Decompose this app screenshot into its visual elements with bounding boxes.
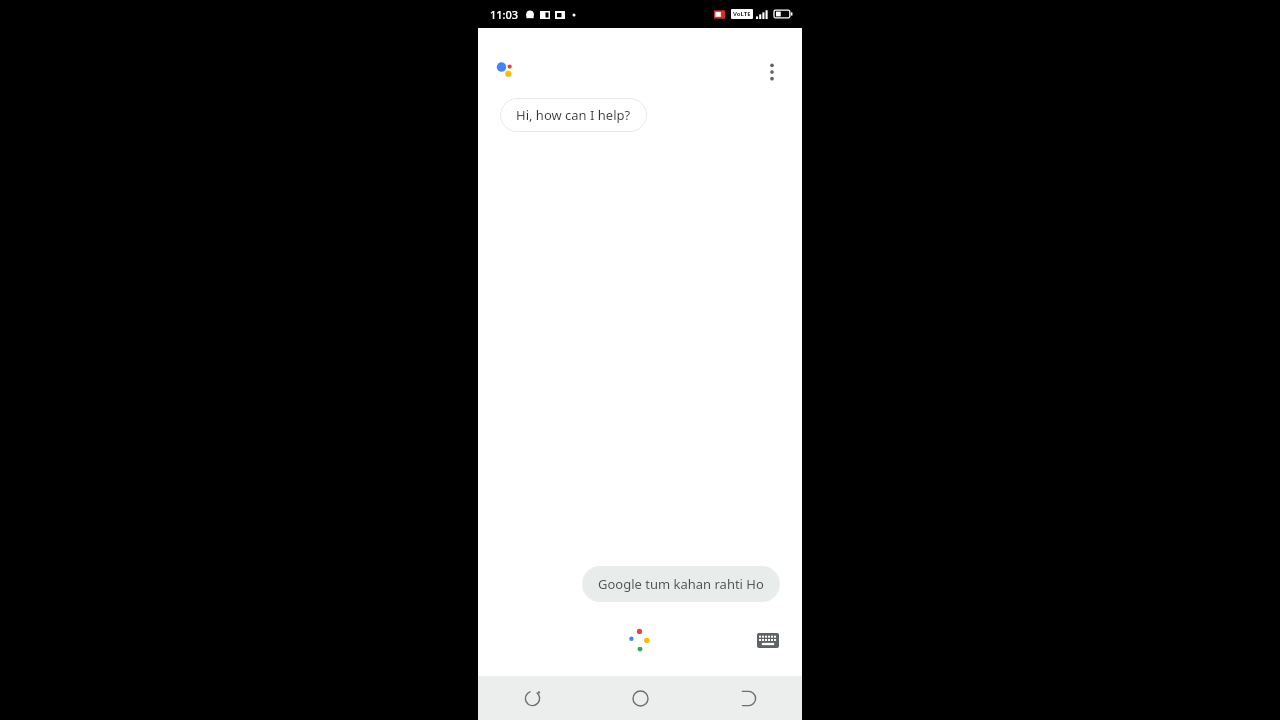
button[interactable]: Home [586, 676, 694, 720]
staticText: Hi, how can I help? [516, 106, 631, 124]
button[interactable]: Listening [620, 620, 660, 660]
button[interactable]: Keyboard [752, 624, 784, 656]
button[interactable]: Recents [478, 676, 586, 720]
staticText: 11:03 [490, 7, 519, 22]
button[interactable]: Hi, how can I help? [500, 98, 647, 132]
other: Google Assistant [496, 60, 518, 82]
button[interactable]: Google tum kahan rahti Ho [582, 566, 780, 602]
button[interactable]: More options [754, 54, 790, 90]
button[interactable]: Back [694, 676, 802, 720]
staticText: Google tum kahan rahti Ho [598, 575, 764, 593]
staticText: VoLTE [733, 10, 751, 18]
